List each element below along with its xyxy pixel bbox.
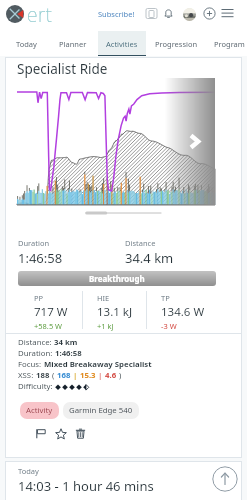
staticText: XSS: xyxy=(18,370,36,381)
staticText: Activities xyxy=(106,39,138,49)
button[interactable]: Menu xyxy=(221,7,234,20)
button[interactable]: Subscribe! xyxy=(96,8,137,20)
button[interactable]: Progression xyxy=(146,31,207,56)
staticText: TP xyxy=(161,293,170,303)
staticText: Distance: xyxy=(18,337,54,348)
staticText: Planner xyxy=(59,39,87,49)
staticText: Breakthrough xyxy=(89,273,145,284)
staticText: 34 km xyxy=(54,337,78,348)
staticText: 4.6 xyxy=(105,370,117,381)
button[interactable]: Breakthrough xyxy=(18,271,216,286)
staticText: HIE xyxy=(97,293,110,303)
staticText: ( xyxy=(50,370,57,381)
staticText: 188 xyxy=(36,370,50,381)
button[interactable]: Garmin Edge 540 xyxy=(63,402,139,419)
button[interactable]: Activity xyxy=(20,402,59,419)
staticText: 134.6 W xyxy=(161,304,205,320)
staticText: | xyxy=(71,370,80,381)
button[interactable]: Program xyxy=(207,31,247,56)
button[interactable]: Planner xyxy=(52,31,93,56)
staticText: 13.1 kJ xyxy=(97,304,133,320)
button[interactable]: Profile xyxy=(183,8,196,21)
staticText: Specialist Ride xyxy=(17,60,108,78)
staticText: ) xyxy=(117,370,122,381)
button[interactable]: Today xyxy=(10,31,43,56)
button[interactable]: Add activity xyxy=(203,7,216,20)
staticText: +1 kJ xyxy=(97,321,114,331)
staticText: 168 xyxy=(57,370,71,381)
staticText: ert xyxy=(27,1,53,28)
staticText: Progression xyxy=(155,39,198,49)
staticText: Today xyxy=(18,466,39,476)
staticText: 1:46:58 xyxy=(55,348,82,359)
staticText: 1:46:58 xyxy=(18,249,63,267)
staticText: Difficulty: xyxy=(18,381,55,392)
staticText: 34.4 km xyxy=(125,249,174,267)
staticText: -3 W xyxy=(161,321,177,331)
staticText: 14:03 - 1 hour 46 mins xyxy=(18,477,154,495)
button[interactable]: Scroll to top xyxy=(212,466,238,492)
button[interactable]: Workouts xyxy=(145,7,158,20)
staticText: Duration: xyxy=(18,348,55,359)
staticText: Garmin Edge 540 xyxy=(69,405,133,416)
button[interactable]: Delete xyxy=(74,427,87,440)
button[interactable]: Activities xyxy=(98,31,146,56)
staticText: Mixed Breakaway Specialist xyxy=(44,359,152,370)
staticText: Activity xyxy=(26,405,53,416)
staticText: PP xyxy=(34,293,44,303)
button[interactable]: Flag activity xyxy=(34,427,47,440)
staticText: Today xyxy=(16,39,37,49)
staticText: Distance xyxy=(125,238,156,248)
staticText: Subscribe! xyxy=(98,9,135,19)
staticText: Duration xyxy=(18,238,50,248)
staticText: +58.5 W xyxy=(34,321,63,331)
button[interactable]: Favourite xyxy=(54,427,67,440)
button[interactable]: Notifications xyxy=(162,7,175,20)
staticText: 15.3 xyxy=(80,370,96,381)
staticText: 717 W xyxy=(34,304,68,320)
staticText: Focus: xyxy=(18,359,44,370)
staticText: Program xyxy=(214,39,245,49)
staticText: | xyxy=(96,370,105,381)
